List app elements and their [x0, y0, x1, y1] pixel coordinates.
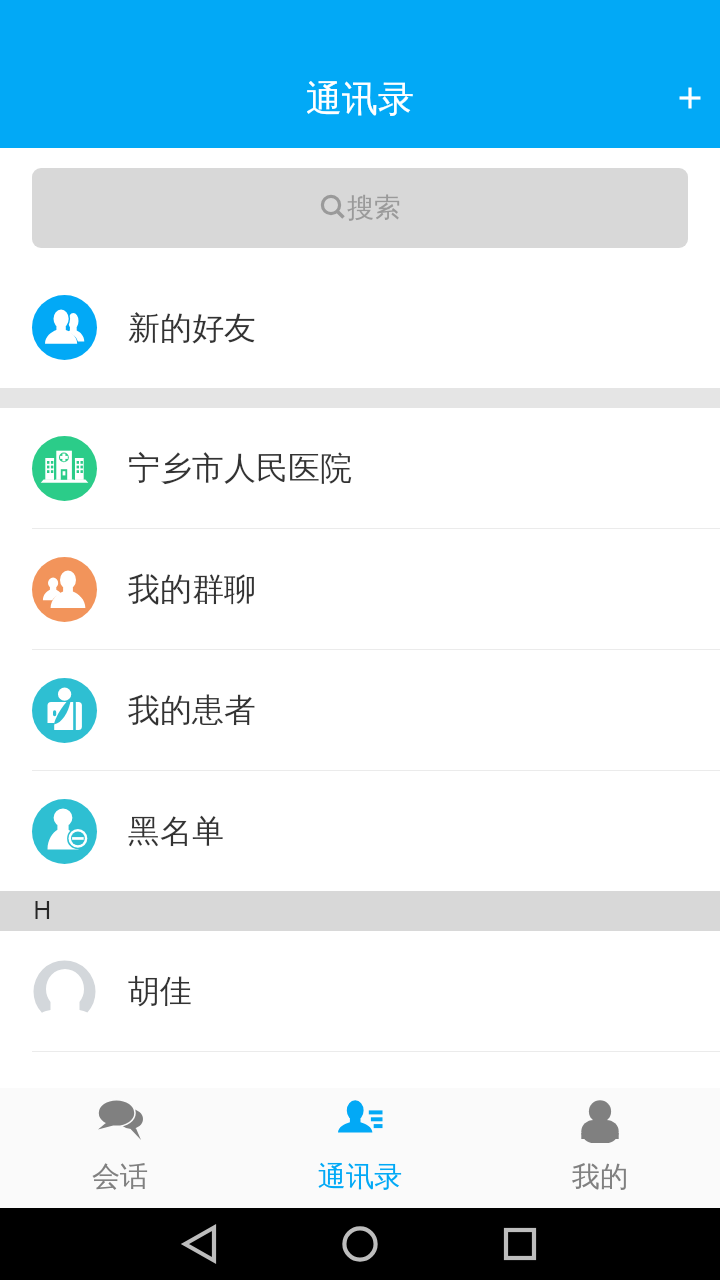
button[interactable]: 黑名单: [0, 771, 720, 891]
button[interactable]: Add: [660, 48, 720, 148]
button[interactable]: 会话: [0, 1088, 240, 1208]
button[interactable]: 胡佳: [0, 931, 720, 1051]
staticText: 胡佳: [128, 971, 192, 1011]
button[interactable]: 通讯录: [240, 1088, 480, 1208]
button[interactable]: 我的: [480, 1088, 720, 1208]
staticText: 我的患者: [128, 690, 256, 730]
staticText: 我的群聊: [128, 569, 256, 609]
staticText: 黑名单: [128, 811, 224, 851]
staticText: H: [33, 892, 52, 926]
staticText: 新的好友: [128, 308, 256, 348]
staticText: 通讯录: [306, 76, 414, 121]
button[interactable]: 我的患者: [0, 650, 720, 770]
staticText: 会话: [92, 1159, 148, 1194]
staticText: 我的: [572, 1159, 628, 1194]
button[interactable]: 宁乡市人民医院: [0, 408, 720, 528]
button[interactable]: 新的好友: [0, 267, 720, 388]
staticText: 搜索: [347, 191, 401, 225]
staticText: 通讯录: [318, 1159, 402, 1194]
staticText: 宁乡市人民医院: [128, 448, 352, 488]
button[interactable]: 我的群聊: [0, 529, 720, 649]
button[interactable]: 搜索: [32, 168, 688, 248]
